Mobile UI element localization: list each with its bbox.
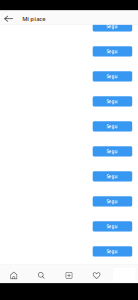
button[interactable]: Segui	[93, 121, 132, 131]
staticText: Segui	[106, 223, 118, 229]
button[interactable]: Segui	[93, 171, 132, 181]
button[interactable]: Segui	[93, 21, 132, 31]
staticText: Segui	[106, 198, 118, 204]
staticText: Segui	[106, 23, 118, 29]
staticText: Segui	[106, 98, 118, 104]
button[interactable]: Activity	[83, 265, 110, 283]
button[interactable]: Segui	[93, 46, 132, 56]
staticText: Segui	[106, 123, 118, 129]
button[interactable]: Segui	[93, 221, 132, 231]
button[interactable]: Home	[0, 265, 28, 283]
staticText: Segui	[106, 48, 118, 54]
button[interactable]: Segui	[93, 271, 132, 281]
button[interactable]: Back	[0, 10, 13, 24]
button[interactable]: Segui	[93, 246, 132, 256]
button[interactable]: Segui	[93, 146, 132, 156]
staticText: Segui	[106, 148, 118, 154]
button[interactable]: Segui	[93, 71, 132, 81]
button[interactable]: Segui	[93, 96, 132, 106]
staticText: Segui	[106, 173, 118, 179]
staticText: Segui	[106, 248, 118, 254]
staticText: Segui	[106, 73, 118, 79]
staticText: Mi piace	[22, 15, 45, 23]
button[interactable]: Search	[28, 265, 55, 283]
button[interactable]: Create	[55, 265, 83, 283]
button[interactable]: Segui	[93, 196, 132, 206]
